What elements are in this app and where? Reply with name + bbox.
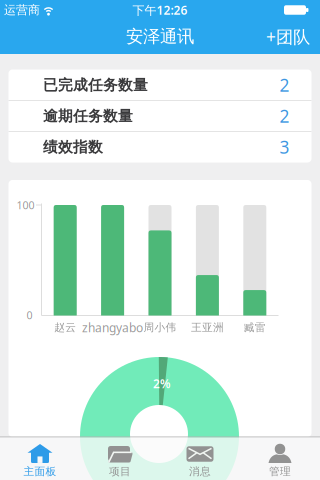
staticText: 2: [279, 104, 289, 127]
staticText: 王亚洲: [191, 321, 224, 334]
staticText: 3: [279, 135, 289, 158]
staticText: +团队: [266, 25, 310, 48]
staticText: 逾期任务数量: [43, 107, 133, 125]
staticText: 臧雷: [244, 321, 266, 334]
staticText: 2: [279, 73, 289, 96]
staticText: 100: [16, 198, 34, 212]
staticText: 0: [26, 308, 32, 322]
staticText: 2%: [153, 375, 171, 391]
staticText: 项目: [109, 465, 131, 478]
staticText: 绩效指数: [43, 138, 103, 156]
staticText: 主面板: [23, 465, 56, 478]
staticText: 运营商: [4, 3, 40, 17]
staticText: 已完成任务数量: [43, 76, 148, 94]
staticText: 周小伟: [143, 321, 176, 334]
staticText: 消息: [189, 465, 211, 478]
staticText: 安泽通讯: [126, 26, 194, 47]
staticText: 管理: [269, 465, 291, 478]
staticText: zhangyabo: [82, 319, 143, 335]
staticText: 下午12:26: [132, 2, 187, 18]
staticText: 赵云: [54, 321, 76, 334]
